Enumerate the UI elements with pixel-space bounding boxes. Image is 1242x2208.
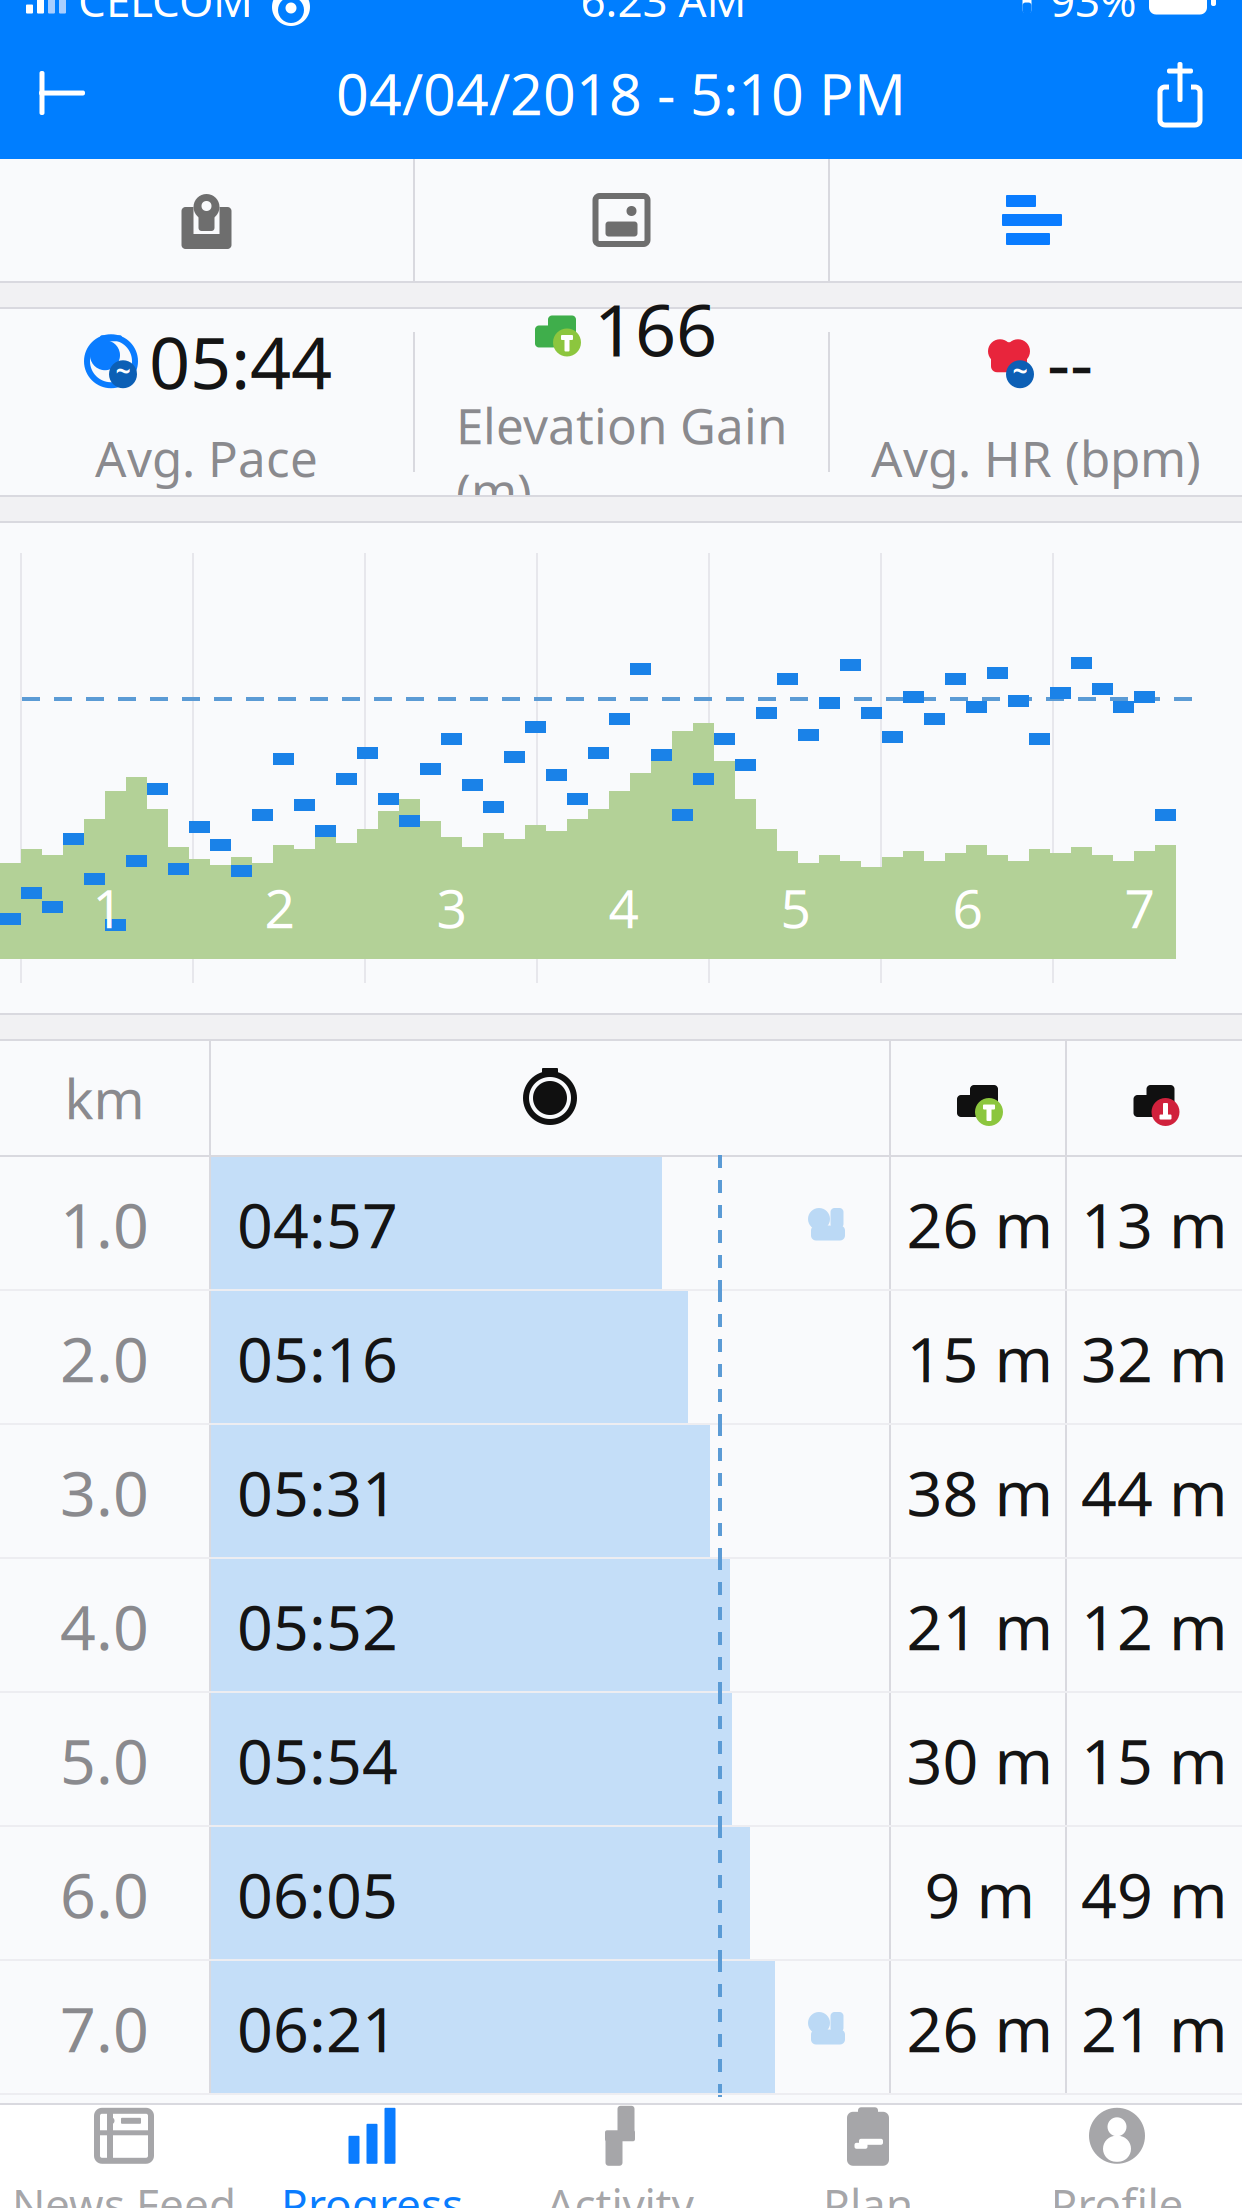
button[interactable]: Splits <box>830 159 1242 281</box>
staticText: 05:16 <box>237 1316 398 1400</box>
staticText: CELCOM <box>78 0 253 29</box>
staticText: ~ <box>115 352 130 388</box>
staticText: 15 m <box>906 1316 1053 1400</box>
staticText: Plan <box>823 2175 913 2208</box>
button[interactable]: News Feed <box>0 2105 248 2208</box>
staticText: 3.0 <box>60 1450 149 1534</box>
staticText: 5.0 <box>60 1718 149 1802</box>
staticText: 3 <box>436 872 467 943</box>
staticText: Profile <box>1050 2175 1183 2208</box>
staticText: 166 <box>594 281 717 376</box>
staticText: 05:44 <box>149 313 332 409</box>
button[interactable]: 5.0 <box>0 1693 1242 1827</box>
staticText: 4.0 <box>60 1584 149 1668</box>
staticText: 12 m <box>1081 1584 1228 1668</box>
button[interactable]: Photos <box>415 159 828 281</box>
staticText: 7.0 <box>60 1986 149 2070</box>
staticText: 2 <box>264 872 295 943</box>
button[interactable]: Plan <box>744 2105 992 2208</box>
button[interactable]: 1.0 <box>0 1157 1242 1291</box>
staticText: 05:54 <box>237 1718 398 1802</box>
button[interactable]: Profile <box>992 2105 1242 2208</box>
staticText: ~ <box>1012 352 1027 388</box>
staticText: 30 m <box>906 1718 1053 1802</box>
staticText: km <box>64 1062 144 1134</box>
staticText: 4 <box>608 872 639 943</box>
staticText: 44 m <box>1081 1450 1228 1534</box>
staticText: 1 <box>92 872 123 943</box>
staticText: 21 m <box>1081 1986 1228 2070</box>
staticText: 04/04/2018 - 5:10 PM <box>336 55 906 131</box>
button[interactable]: Progress <box>248 2105 496 2208</box>
staticText: 5 <box>780 872 811 943</box>
staticText: 06:21 <box>237 1986 398 2070</box>
staticText: 38 m <box>906 1450 1053 1534</box>
staticText: 6 <box>952 872 983 943</box>
staticText: Progress <box>281 2175 463 2208</box>
staticText: 2.0 <box>60 1316 149 1400</box>
staticText: -- <box>1047 313 1093 409</box>
button[interactable]: 2.0 <box>0 1291 1242 1425</box>
staticText: Elevation Gain (m) <box>456 392 787 523</box>
staticText: 26 m <box>906 1986 1053 2070</box>
button[interactable]: 7.0 <box>0 1961 1242 2095</box>
staticText: 04:57 <box>237 1182 398 1266</box>
staticText: Activity <box>546 2175 693 2208</box>
staticText: 13 m <box>1081 1182 1228 1266</box>
staticText: 32 m <box>1081 1316 1228 1400</box>
staticText: 9 m <box>924 1852 1035 1936</box>
button[interactable]: 4.0 <box>0 1559 1242 1693</box>
staticText: 49 m <box>1081 1852 1228 1936</box>
staticText: Avg. Pace <box>95 425 318 491</box>
staticText: 6.0 <box>60 1852 149 1936</box>
staticText: 6:23 AM <box>580 0 746 29</box>
button[interactable]: Activity <box>496 2105 744 2208</box>
button[interactable]: Back <box>22 53 102 133</box>
staticText: 21 m <box>906 1584 1053 1668</box>
staticText: 93% <box>1050 0 1137 29</box>
staticText: 1.0 <box>60 1182 149 1266</box>
staticText: 15 m <box>1081 1718 1228 1802</box>
staticText: News Feed <box>12 2175 236 2208</box>
staticText: 7 <box>1124 872 1155 943</box>
button[interactable]: Map <box>0 159 413 281</box>
button[interactable]: 6.0 <box>0 1827 1242 1961</box>
staticText: 05:31 <box>237 1450 398 1534</box>
button[interactable]: Share <box>1140 53 1220 133</box>
staticText: 06:05 <box>237 1852 398 1936</box>
staticText: Avg. HR (bpm) <box>871 425 1201 491</box>
staticText: 26 m <box>906 1182 1053 1266</box>
staticText: 05:52 <box>237 1584 398 1668</box>
button[interactable]: 3.0 <box>0 1425 1242 1559</box>
